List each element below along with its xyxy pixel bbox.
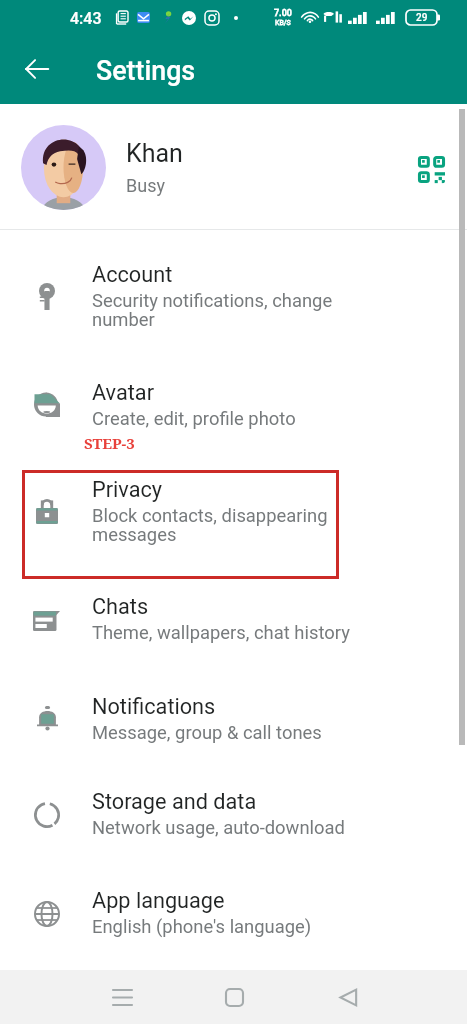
staticText: Privacy (92, 477, 163, 502)
staticText: Busy (126, 175, 165, 196)
staticText: Khan (126, 139, 183, 168)
button[interactable]: Khan (0, 104, 467, 229)
staticText: 7.00 (274, 8, 292, 19)
staticText: Create, edit, profile photo (92, 408, 296, 430)
staticText: Theme, wallpapers, chat history (92, 622, 350, 644)
staticText: English (phone's language) (92, 916, 312, 938)
button[interactable]: Back (324, 970, 372, 1024)
staticText: STEP-3 (84, 433, 135, 453)
staticText: Storage and data (92, 789, 257, 814)
button[interactable]: Back (12, 44, 61, 93)
button[interactable]: QR code (412, 150, 450, 188)
button[interactable]: App language (0, 855, 467, 953)
staticText: Settings (96, 55, 196, 86)
staticText: App language (92, 888, 225, 913)
button[interactable]: Home (210, 970, 258, 1024)
staticText: Notifications (92, 694, 216, 719)
button[interactable]: Privacy (0, 445, 467, 562)
button[interactable]: Chats (0, 562, 467, 660)
staticText: KB/S (275, 19, 291, 27)
button[interactable]: Recent apps (98, 970, 146, 1024)
staticText: Network usage, auto-download (92, 817, 345, 839)
staticText: Block contacts, disappearing messages (92, 505, 328, 546)
staticText: Message, group & call tones (92, 722, 322, 744)
button[interactable]: Notifications (0, 660, 467, 757)
button[interactable]: Avatar (0, 348, 467, 445)
button[interactable]: Storage and data (0, 757, 467, 855)
staticText: Chats (92, 594, 149, 619)
staticText: 4:43 (70, 9, 102, 28)
button[interactable]: Account (0, 230, 467, 348)
staticText: 29 (416, 12, 428, 24)
staticText: Avatar (92, 380, 155, 405)
staticText: Security notifications, change number (92, 290, 333, 331)
staticText: Account (92, 262, 173, 287)
